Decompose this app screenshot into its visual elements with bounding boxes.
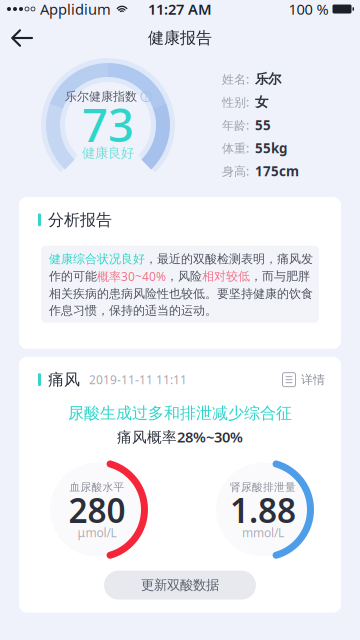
staticText: 11:27 AM <box>148 0 212 19</box>
staticText: 更新双酸数据 <box>141 577 219 593</box>
staticText: 姓名: <box>222 71 249 87</box>
staticText: μmol/L <box>77 525 116 540</box>
staticText: 1.88 <box>230 488 296 532</box>
staticText: 健康良好 <box>82 145 134 161</box>
staticText: 55 <box>255 116 271 134</box>
staticText: 280 <box>68 488 125 532</box>
staticText: 100 % <box>288 0 328 19</box>
staticText: 详情 <box>301 372 325 387</box>
button[interactable]: Back <box>0 18 44 58</box>
staticText: 身高: <box>222 163 249 179</box>
staticText: 性别: <box>222 94 249 110</box>
staticText: 55kg <box>255 139 287 157</box>
button[interactable]: 更新双酸数据 <box>104 571 256 600</box>
staticText: 乐尔健康指数 <box>65 89 137 104</box>
staticText: 作息习惯，保持的适当的运动。 <box>49 303 217 318</box>
staticText: 痛风 <box>48 370 80 389</box>
staticText: 73 <box>82 94 134 155</box>
staticText: 女 <box>255 94 268 110</box>
staticText: 痛风概率28%~30% <box>117 427 243 447</box>
staticText: 175cm <box>255 162 299 180</box>
staticText: ? <box>144 90 148 103</box>
staticText: 年龄: <box>222 117 249 133</box>
staticText: 健康综合状况良好 <box>49 252 145 266</box>
staticText: mmol/L <box>242 525 284 540</box>
staticText: ，风险 <box>166 269 202 284</box>
staticText: Applidium <box>40 0 111 19</box>
staticText: 概率30~40% <box>97 268 166 284</box>
staticText: 2019-11-11 11:11 <box>89 372 187 388</box>
staticText: 血尿酸水平 <box>69 480 124 494</box>
staticText: 相对较低 <box>202 269 250 284</box>
staticText: 乐尔 <box>255 71 281 87</box>
staticText: 尿酸生成过多和排泄减少综合征 <box>68 403 292 423</box>
staticText: ，而与肥胖 <box>250 269 310 284</box>
staticText: 作的可能 <box>49 269 97 284</box>
staticText: 体重: <box>222 140 249 156</box>
staticText: ，最近的双酸检测表明，痛风发 <box>145 252 313 266</box>
staticText: 分析报告 <box>48 210 112 230</box>
staticText: 肾尿酸排泄量 <box>230 480 296 494</box>
staticText: 健康报告 <box>148 28 212 48</box>
staticText: 相关疾病的患病风险性也较低。要坚持健康的饮食 <box>49 286 313 301</box>
button[interactable]: 详情 <box>282 372 325 387</box>
